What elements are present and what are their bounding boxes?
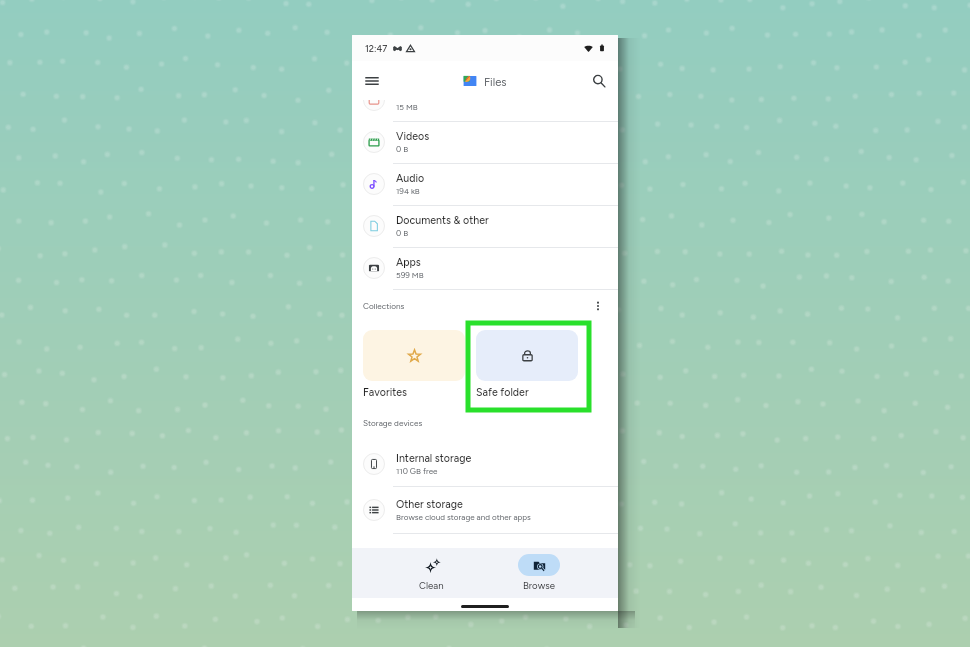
button[interactable]: Videos [352,121,618,163]
button[interactable]: Audio [352,163,618,205]
staticText: Storage devices [363,418,423,428]
button[interactable]: Internal storage [352,443,618,485]
button[interactable]: Browse [485,548,592,598]
staticText: Safe folder [476,386,529,399]
staticText: 110 GB free [396,466,438,476]
staticText: 12:47 [365,43,388,54]
staticText: Other storage [396,498,463,511]
button[interactable]: More options [587,295,609,317]
staticText: Collections [363,301,405,311]
staticText: Documents & other [396,214,489,227]
button[interactable]: Favorites [363,330,465,399]
button[interactable]: Clean [378,548,485,598]
staticText: 15 MB [396,102,418,112]
staticText: 0 B [396,144,409,154]
staticText: Clean [419,580,444,592]
button[interactable]: Other storage [352,489,618,531]
staticText: Videos [396,130,430,143]
staticText: 0 B [396,228,409,238]
staticText: Browse cloud storage and other apps [396,512,531,522]
button[interactable]: Documents & other [352,205,618,247]
staticText: Favorites [363,386,408,399]
staticText: 599 MB [396,270,424,280]
button[interactable]: Search [579,61,618,100]
staticText: 194 kB [396,186,420,196]
staticText: Files [484,75,507,88]
staticText: Browse [523,580,555,592]
staticText: Audio [396,172,425,185]
button[interactable]: Safe folder [476,330,578,399]
button[interactable]: Apps [352,247,618,289]
button[interactable]: Open navigation menu [352,61,391,100]
staticText: Internal storage [396,452,472,465]
button[interactable]: Images [352,100,618,121]
staticText: Apps [396,256,421,269]
